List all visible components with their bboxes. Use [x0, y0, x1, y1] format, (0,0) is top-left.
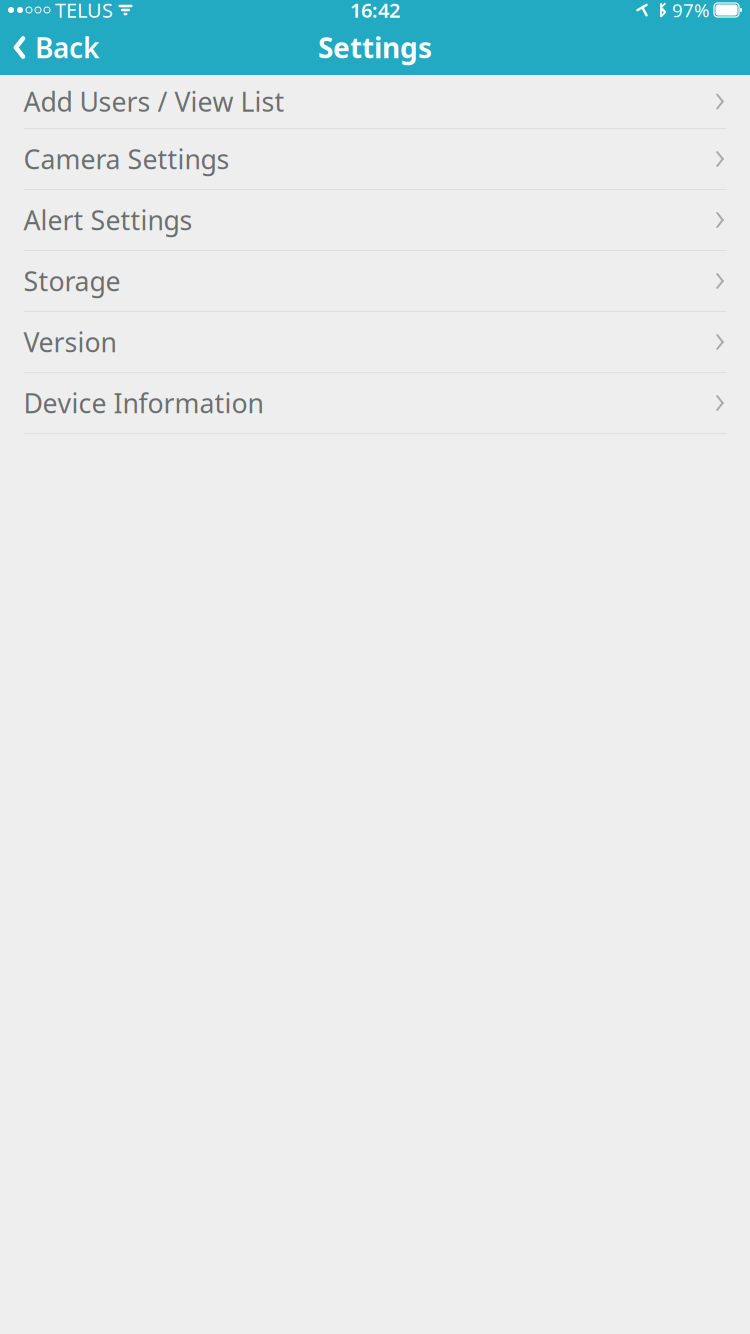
staticText: TELUS — [55, 0, 113, 23]
button[interactable]: Alert Settings — [0, 190, 750, 251]
staticText: Settings — [318, 29, 432, 66]
staticText: Add Users / View List — [23, 84, 284, 119]
button[interactable]: Device Information — [0, 373, 750, 434]
staticText: 97% — [672, 0, 710, 22]
button[interactable]: Camera Settings — [0, 129, 750, 190]
staticText: Back — [35, 29, 99, 66]
button[interactable]: Storage — [0, 251, 750, 312]
staticText: Camera Settings — [23, 141, 229, 177]
button[interactable]: Back — [0, 19, 111, 76]
button[interactable]: Add Users / View List — [0, 75, 750, 129]
button[interactable]: Version — [0, 312, 750, 373]
staticText: Version — [23, 324, 116, 360]
staticText: Storage — [23, 263, 120, 299]
staticText: 16:42 — [350, 0, 400, 23]
staticText: Device Information — [23, 385, 263, 421]
staticText: Alert Settings — [23, 202, 192, 238]
